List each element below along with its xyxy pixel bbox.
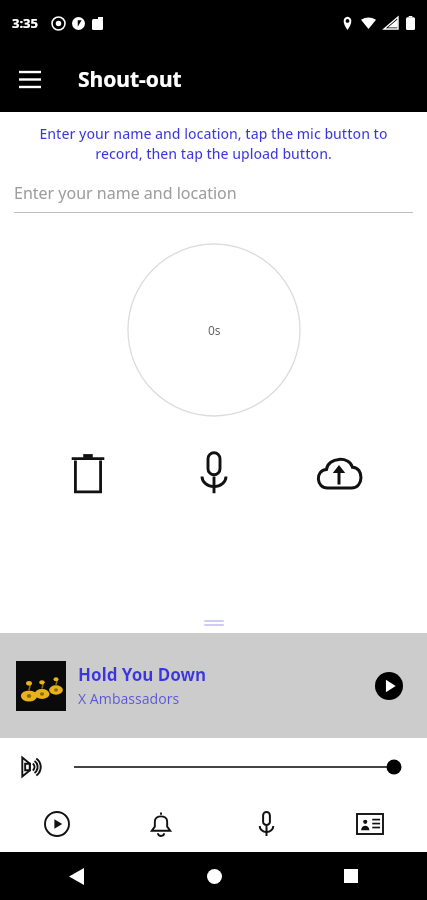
staticText: Hold You Down bbox=[78, 663, 207, 686]
button[interactable]: Expand player bbox=[0, 613, 427, 633]
button[interactable]: Home bbox=[194, 856, 234, 896]
button[interactable]: Open navigation menu bbox=[8, 57, 52, 101]
button[interactable]: Microphone bbox=[243, 801, 289, 847]
button[interactable]: Delete recording bbox=[60, 445, 116, 501]
button[interactable]: Recent apps bbox=[331, 856, 371, 896]
button[interactable]: Back bbox=[56, 856, 96, 896]
button[interactable]: Volume bbox=[14, 747, 54, 787]
button[interactable]: Enter your name and location bbox=[14, 182, 413, 213]
staticText: Shout-out bbox=[78, 65, 182, 94]
button[interactable]: Notifications bbox=[138, 801, 184, 847]
button[interactable]: Hold You Down bbox=[0, 633, 427, 738]
button[interactable]: Play bbox=[367, 664, 411, 708]
staticText: 0s bbox=[208, 322, 221, 338]
button[interactable]: Record with microphone bbox=[186, 445, 242, 501]
button[interactable]: Play recordings bbox=[34, 801, 80, 847]
staticText: X Ambassadors bbox=[78, 689, 180, 708]
staticText: 3:35 bbox=[12, 14, 38, 32]
button[interactable]: Upload recording bbox=[311, 445, 367, 501]
staticText: Enter your name and location bbox=[14, 182, 237, 204]
staticText: Enter your name and location, tap the mi… bbox=[22, 124, 405, 164]
button[interactable]: Contact card bbox=[347, 801, 393, 847]
button[interactable]: Volume slider bbox=[74, 753, 401, 781]
